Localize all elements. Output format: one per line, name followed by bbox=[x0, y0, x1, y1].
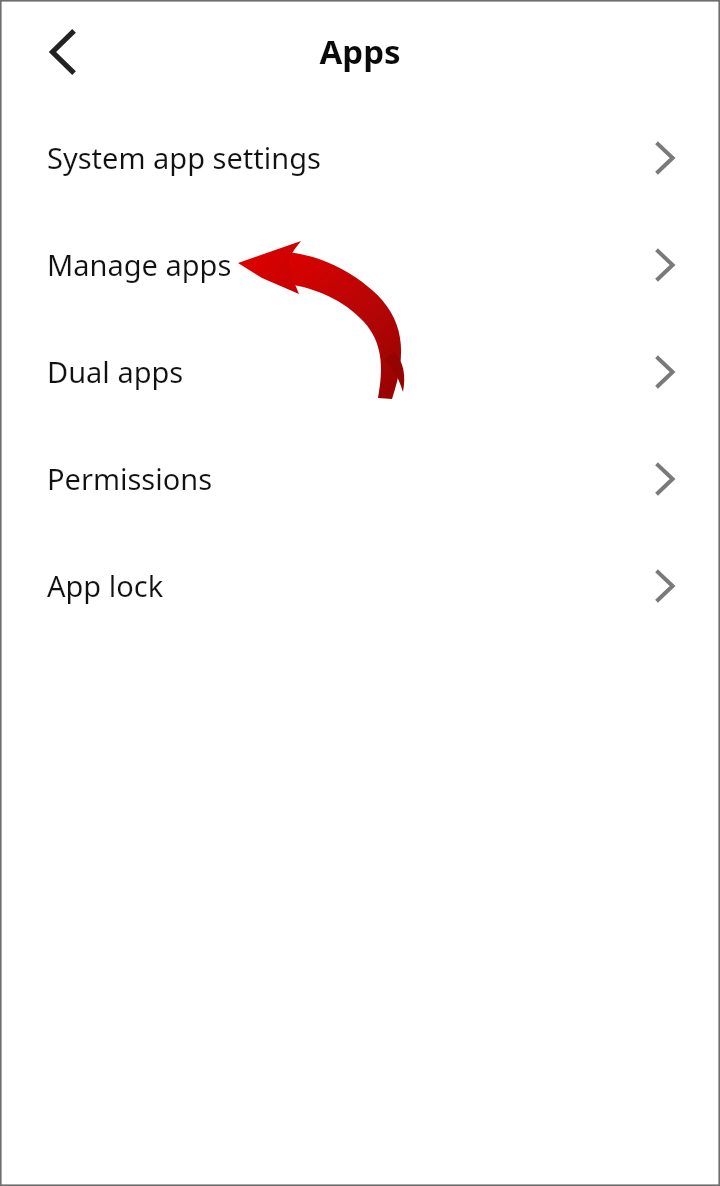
staticText: Permissions bbox=[47, 459, 213, 498]
staticText: Dual apps bbox=[47, 352, 184, 391]
button[interactable]: Manage apps bbox=[0, 211, 720, 318]
staticText: Apps bbox=[319, 29, 401, 74]
staticText: App lock bbox=[47, 566, 164, 605]
button[interactable]: System app settings bbox=[0, 104, 720, 211]
button[interactable]: Back bbox=[26, 16, 98, 88]
button[interactable]: Permissions bbox=[0, 425, 720, 532]
staticText: System app settings bbox=[47, 138, 321, 177]
button[interactable]: App lock bbox=[0, 532, 720, 639]
staticText: Manage apps bbox=[47, 245, 232, 284]
button[interactable]: Dual apps bbox=[0, 318, 720, 425]
